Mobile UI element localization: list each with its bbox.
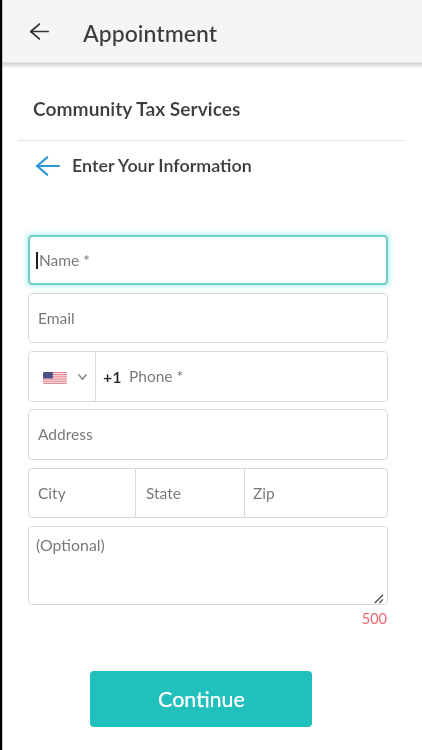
- button[interactable]: State: [136, 468, 244, 518]
- button[interactable]: (Optional): [28, 526, 388, 605]
- button[interactable]: Back to previous step: [33, 151, 63, 181]
- staticText: Phone *: [129, 367, 184, 386]
- staticText: +1: [103, 367, 122, 386]
- staticText: City: [38, 484, 66, 503]
- button[interactable]: City: [28, 468, 135, 518]
- staticText: Name *: [39, 251, 90, 270]
- staticText: Continue: [158, 686, 245, 712]
- staticText: Community Tax Services: [33, 97, 241, 120]
- staticText: Address: [38, 425, 93, 444]
- button[interactable]: Continue: [90, 671, 312, 727]
- button[interactable]: Zip: [245, 468, 388, 518]
- staticText: Email: [38, 309, 75, 328]
- staticText: State: [146, 484, 181, 503]
- button[interactable]: Select country code: [28, 351, 95, 402]
- staticText: (Optional): [36, 535, 105, 554]
- button[interactable]: Name *: [28, 235, 388, 285]
- button[interactable]: Email: [28, 293, 388, 343]
- staticText: Enter Your Information: [72, 154, 252, 175]
- staticText: Zip: [253, 484, 275, 503]
- staticText: 500: [28, 610, 387, 627]
- staticText: Appointment: [83, 19, 218, 47]
- button[interactable]: Address: [28, 409, 388, 460]
- button[interactable]: Back: [20, 12, 58, 50]
